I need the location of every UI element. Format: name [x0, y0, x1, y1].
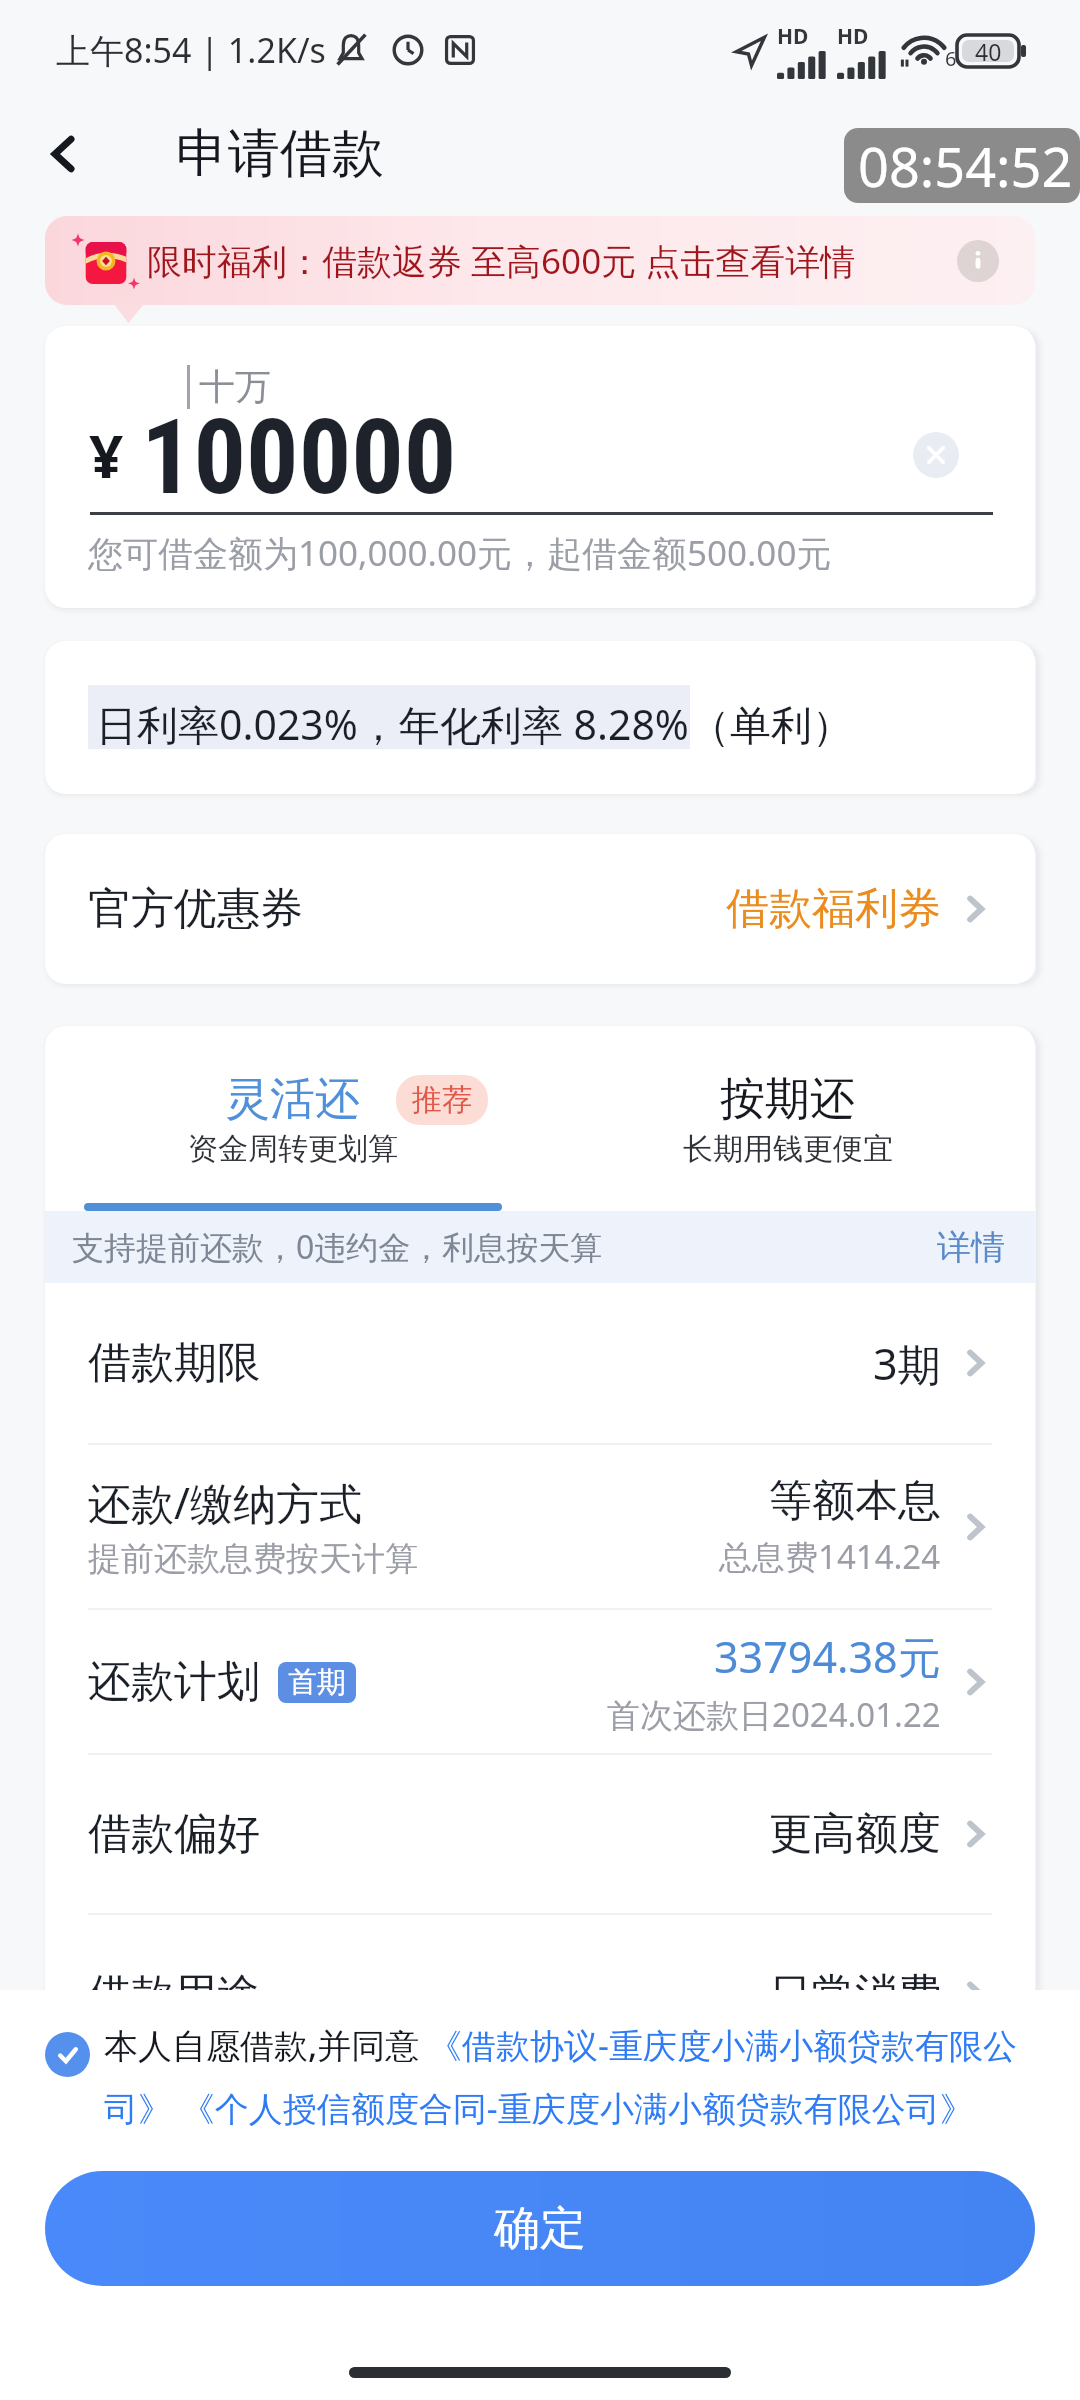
staticText: 08:54:52 [858, 129, 1073, 203]
button[interactable]: 确定 [45, 2171, 1035, 2286]
button[interactable]: 限时福利：借款返券 至高600元 点击查看详情 [45, 216, 1035, 305]
button[interactable]: Clear [913, 432, 959, 478]
staticText: 40 [975, 36, 1002, 67]
button[interactable]: 借款期限 [45, 1283, 1035, 1443]
staticText: 首期 [288, 1664, 346, 1701]
staticText: ¥ [89, 414, 124, 496]
staticText: 长期用钱更便宜 [683, 1130, 893, 1168]
staticText: 支持提前还款，0违约金，利息按天算 [72, 1225, 603, 1269]
staticText: 限时福利：借款返券 至高600元 点击查看详情 [147, 237, 856, 285]
button[interactable]: Agree checkbox [45, 2032, 90, 2077]
staticText: 按期还 [720, 1071, 855, 1128]
staticText: 您可借金额为100,000.00元，起借金额500.00元 [88, 529, 832, 577]
staticText: 借款福利券 [726, 882, 941, 936]
staticText: HD [837, 22, 869, 51]
staticText: 等额本息 [769, 1474, 941, 1528]
button[interactable]: 官方优惠券 [45, 834, 1035, 984]
button[interactable]: Info [957, 240, 999, 282]
staticText: 更高额度 [769, 1807, 941, 1861]
staticText: 3期 [873, 1334, 941, 1393]
staticText: HD [777, 22, 809, 51]
staticText: 推荐 [412, 1081, 472, 1119]
button[interactable]: 还款计划 [45, 1610, 1035, 1753]
staticText: 100000 [141, 397, 457, 519]
button[interactable]: Back [30, 121, 96, 187]
staticText: 上午8:54 | 1.2K/s [56, 27, 326, 73]
staticText: 总息费1414.24 [719, 1534, 941, 1579]
staticText: 灵活还 [225, 1071, 360, 1128]
staticText: 提前还款息费按天计算 [88, 1538, 418, 1580]
button[interactable]: 借款偏好 [45, 1755, 1035, 1913]
button[interactable]: 灵活还 [45, 1026, 540, 1211]
staticText: 33794.38元 [714, 1627, 941, 1686]
staticText: 还款/缴纳方式 [88, 1473, 362, 1532]
staticText: 申请借款 [176, 121, 384, 187]
button[interactable]: 还款/缴纳方式 [45, 1445, 1035, 1608]
staticText: 借款偏好 [88, 1807, 260, 1861]
staticText: 还款计划 [88, 1655, 260, 1709]
button[interactable]: 按期还 [540, 1026, 1035, 1211]
staticText: 首次还款日2024.01.22 [607, 1692, 941, 1737]
staticText: 本人自愿借款,并同意 《借款协议-重庆度小满小额贷款有限公司》 《个人授信额度合… [104, 2022, 1035, 2131]
staticText: 借款期限 [88, 1336, 260, 1390]
staticText: 详情 [937, 1226, 1005, 1269]
staticText: 官方优惠券 [88, 882, 303, 936]
staticText: 6 [945, 45, 957, 72]
staticText: 日利率0.023%，年化利率 8.28%（单利） [96, 696, 853, 752]
staticText: 资金周转更划算 [188, 1130, 398, 1168]
staticText: 十万 [199, 364, 271, 409]
button[interactable]: 借款用途 [45, 1915, 1035, 2075]
staticText: 日常消费 [769, 1968, 941, 2022]
staticText: 确定 [494, 2200, 586, 2258]
staticText: 借款用途 [88, 1968, 260, 2022]
